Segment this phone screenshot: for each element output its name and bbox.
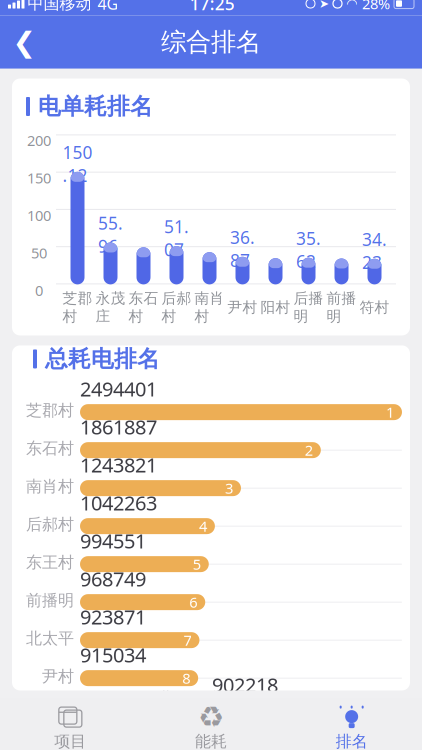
staticText: 4G [97, 0, 118, 14]
button[interactable]: 排名 [281, 701, 422, 750]
staticText: 后郝村 [161, 289, 191, 325]
staticText: 5 [193, 554, 201, 574]
staticText: 36.87 [230, 226, 255, 272]
staticText: 1042263 [80, 490, 157, 516]
staticText: 34.23 [362, 228, 387, 274]
staticText: 968749 [80, 566, 146, 592]
staticText: 55.96 [98, 211, 123, 257]
button[interactable]: 返回 [0, 16, 48, 69]
staticText: 永茂庄 [95, 289, 125, 325]
staticText: 阳村 [260, 298, 290, 316]
button[interactable]: ♻ [141, 701, 281, 750]
button[interactable]: 项目 [0, 701, 141, 750]
staticText: 915034 [80, 642, 146, 668]
staticText: 923871 [80, 604, 146, 630]
staticText: 前播明 [326, 289, 356, 325]
staticText: 902218 [212, 672, 278, 698]
staticText: 2 [305, 440, 313, 460]
staticText: 项目 [54, 732, 86, 750]
staticText: 符村 [359, 298, 389, 316]
staticText: 150.12 [62, 141, 92, 187]
staticText: 综合排名 [161, 26, 261, 58]
staticText: 35.62 [296, 227, 321, 273]
staticText: 排名 [336, 732, 368, 750]
staticText: 50 [31, 243, 47, 263]
staticText: 北太平 [26, 628, 74, 648]
staticText: ◠ [346, 0, 358, 11]
staticText: 0 [35, 281, 43, 300]
staticText: 1 [386, 402, 394, 422]
staticText: 北孙堡 [158, 688, 206, 708]
staticText: 1861887 [80, 414, 157, 440]
staticText: 2494401 [80, 376, 157, 402]
staticText: 尹村 [42, 666, 74, 686]
staticText: 芝郡村 [62, 289, 92, 325]
staticText: 东石村 [128, 289, 158, 325]
staticText: 后播明 [293, 289, 323, 325]
staticText: 8 [182, 668, 190, 688]
staticText: 南肖村 [194, 289, 224, 325]
staticText: 3 [225, 478, 233, 498]
staticText: 6 [189, 592, 197, 612]
staticText: 芝郡村 [26, 400, 74, 420]
staticText: 17:25 [190, 0, 235, 15]
staticText: 南肖村 [26, 476, 74, 496]
staticText: 51.07 [164, 215, 189, 261]
staticText: ➤ [319, 0, 329, 10]
staticText: 中国移动 [27, 0, 91, 13]
staticText: ♻ [198, 700, 224, 734]
staticText: 电单耗排名 [38, 93, 153, 120]
staticText: 1243821 [80, 452, 157, 478]
staticText: 4 [199, 516, 207, 536]
staticText: 994551 [80, 528, 146, 554]
staticText: 7 [183, 630, 191, 650]
staticText: 尹村 [227, 298, 257, 316]
staticText: 东石村 [26, 438, 74, 458]
staticText: 200 [27, 131, 51, 150]
staticText: 后郝村 [26, 514, 74, 534]
staticText: 150 [27, 168, 51, 188]
staticText: 28% [362, 0, 390, 13]
staticText: 东王村 [26, 552, 74, 572]
staticText: ❮ [12, 26, 35, 58]
staticText: 总耗电排名 [45, 345, 160, 373]
staticText: 前播明 [26, 590, 74, 610]
staticText: 100 [27, 206, 51, 225]
staticText: 能耗 [195, 732, 227, 750]
